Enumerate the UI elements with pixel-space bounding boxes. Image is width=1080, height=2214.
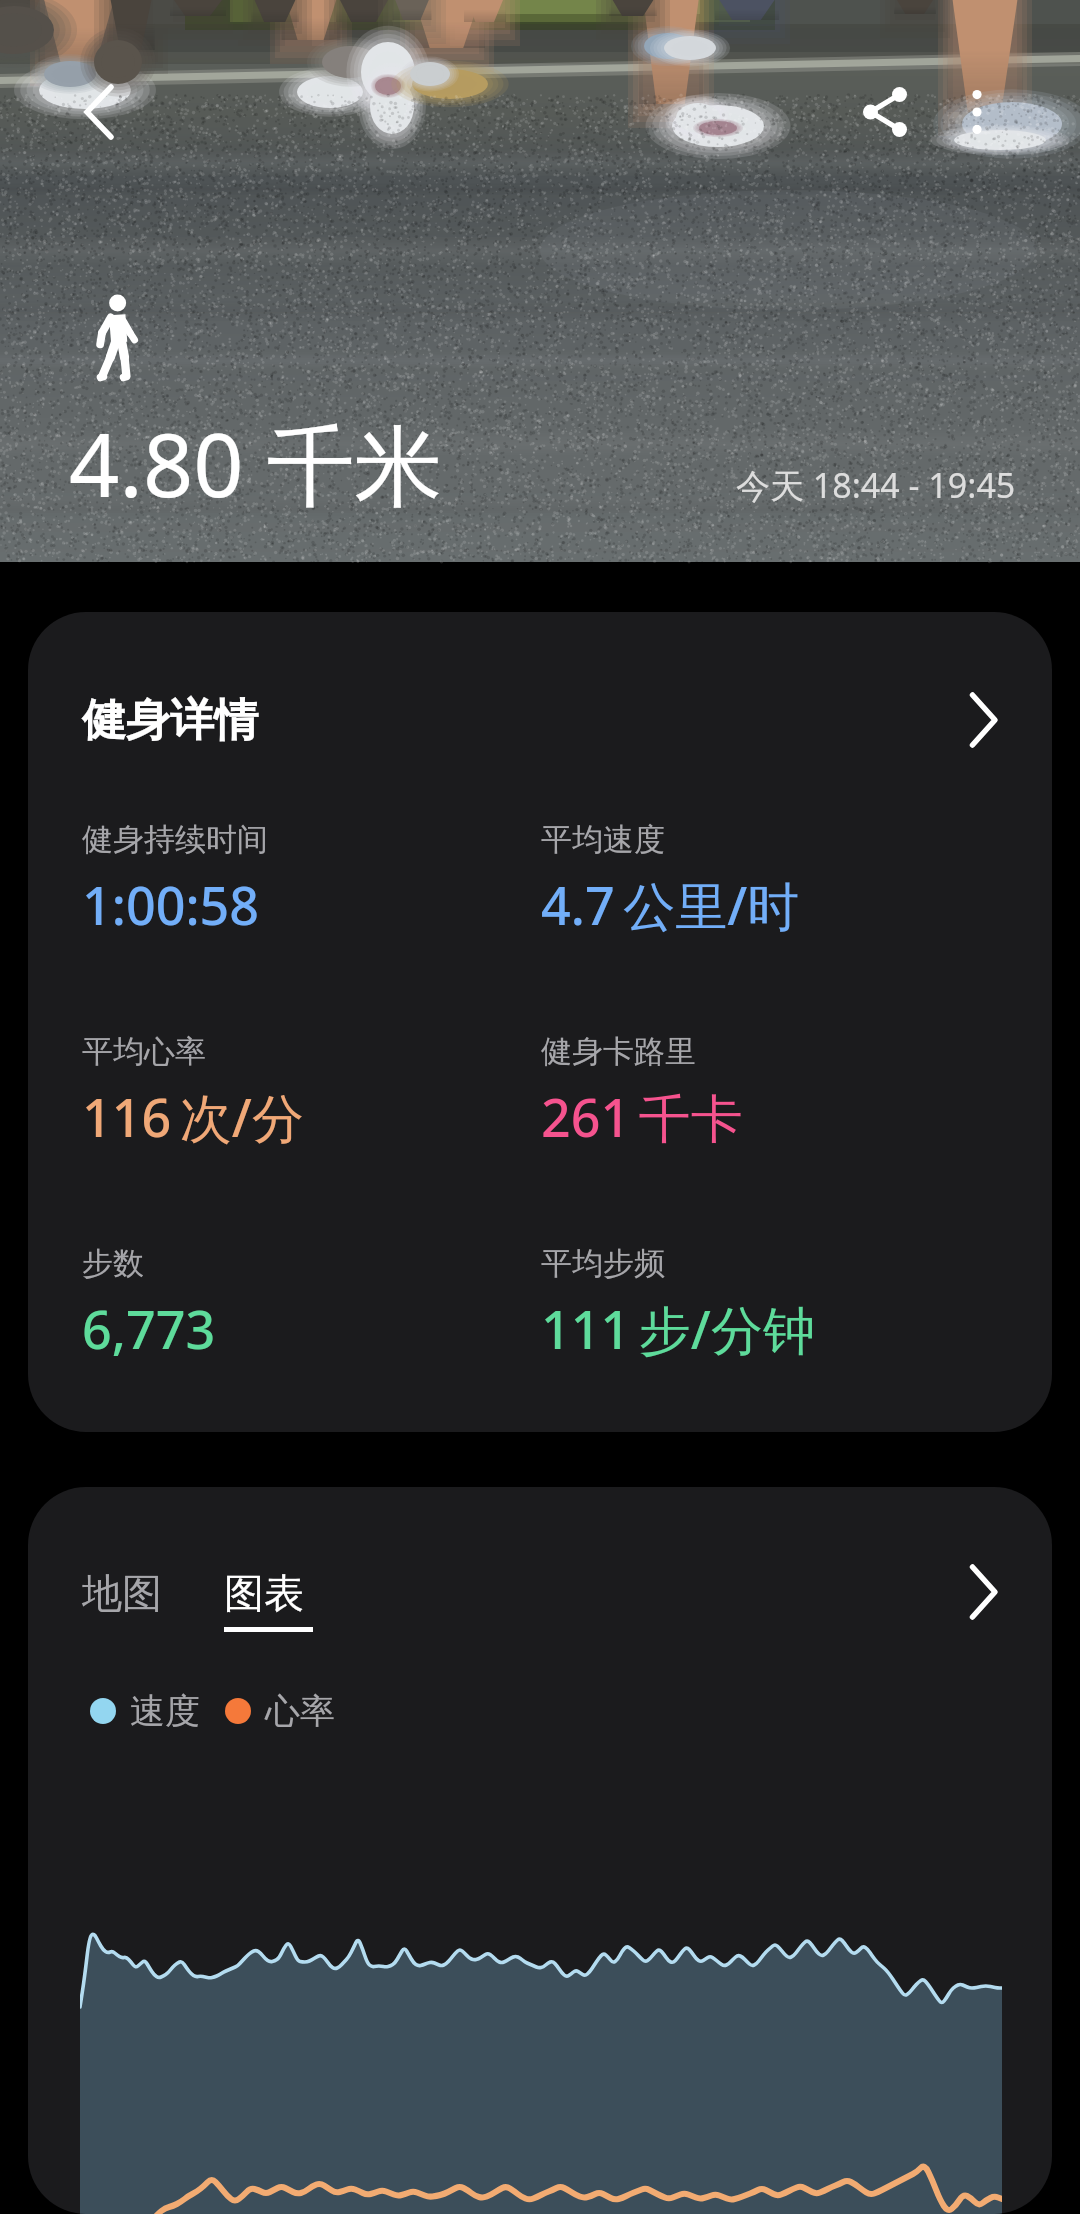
button[interactable]: 图表 (224, 1568, 313, 1632)
staticText: 261 千卡 (541, 1081, 743, 1152)
button[interactable]: 地图 (82, 1568, 162, 1618)
staticText: 图表 (224, 1568, 304, 1618)
staticText: 平均心率 (82, 1032, 206, 1071)
button[interactable]: 健身详情 (28, 612, 1052, 1432)
staticText: 4.7 公里/时 (541, 869, 800, 940)
staticText: 健身详情 (82, 693, 258, 748)
staticText: 地图 (82, 1568, 162, 1618)
staticText: 6,773 (82, 1293, 216, 1364)
staticText: 111 步/分钟 (541, 1293, 815, 1364)
staticText: 健身持续时间 (82, 820, 268, 859)
staticText: 健身卡路里 (541, 1032, 696, 1071)
staticText: 步数 (82, 1244, 144, 1283)
button[interactable]: Share (839, 66, 931, 158)
staticText: 心率 (265, 1689, 335, 1733)
staticText: 平均速度 (541, 820, 665, 859)
staticText: 4.80 千米 (69, 403, 443, 523)
staticText: 今天 18:44 - 19:45 (736, 462, 1016, 508)
staticText: 速度 (130, 1689, 200, 1733)
staticText: 平均步频 (541, 1244, 665, 1283)
staticText: 1:00:58 (82, 869, 260, 940)
staticText: 116 次/分 (82, 1081, 304, 1152)
button[interactable]: Back (53, 66, 145, 158)
button[interactable]: More options (931, 66, 1023, 158)
